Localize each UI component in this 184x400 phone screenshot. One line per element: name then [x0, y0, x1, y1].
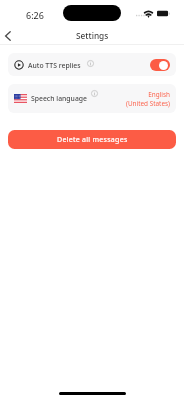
button[interactable]: Speech language: [8, 84, 176, 113]
button[interactable]: Auto TTS replies toggle: [150, 59, 170, 71]
staticText: Speech language: [31, 94, 87, 103]
button[interactable]: Auto TTS replies: [8, 53, 176, 76]
staticText: English (United States): [126, 90, 170, 108]
staticText: 6:26: [26, 9, 44, 21]
staticText: Delete all messages: [57, 135, 128, 145]
button[interactable]: Delete all messages: [8, 130, 176, 149]
button[interactable]: Back: [0, 26, 18, 46]
staticText: Settings: [76, 30, 109, 41]
staticText: Auto TTS replies: [28, 61, 81, 70]
